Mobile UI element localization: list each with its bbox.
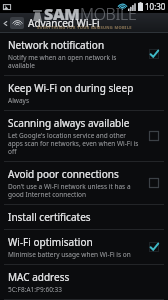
button[interactable]: Disabled <box>146 128 162 144</box>
button[interactable]: Network notification <box>0 33 168 75</box>
button[interactable]: Wi-Fi optimisation <box>0 230 168 264</box>
button[interactable]: Enabled <box>146 239 162 255</box>
button[interactable]: Enabled <box>146 46 162 62</box>
staticText: Avoid poor connections <box>8 167 119 181</box>
staticText: Scanning always available <box>8 116 130 130</box>
staticText: SAM <box>44 3 80 25</box>
button[interactable]: Avoid poor connections <box>0 162 168 204</box>
staticText: Don't use a Wi-Fi network unless it has … <box>8 182 142 199</box>
staticText: Advanced Wi-Fi <box>28 16 100 30</box>
button[interactable]: Scanning always available <box>0 111 168 161</box>
staticText: 5C:F8:A1:P9:60:33 <box>8 285 63 294</box>
staticText: EVERYTHING FOR YOUR SAMSUNG MOBILE <box>37 25 132 30</box>
button[interactable]: Install certificates <box>0 205 168 229</box>
staticText: Let Google's location service and other … <box>8 131 142 156</box>
staticText: Notify me when an open network is availa… <box>8 53 142 70</box>
staticText: MAC address <box>8 270 70 284</box>
staticText: Install certificates <box>8 210 91 224</box>
staticText: Always <box>8 96 30 105</box>
button[interactable]: Navigate up <box>0 13 10 33</box>
staticText: Network notification <box>8 38 105 52</box>
button[interactable]: MAC address <box>0 265 168 299</box>
staticText: 10:30 <box>145 1 166 12</box>
staticText: Keep Wi-Fi on during sleep <box>8 81 134 95</box>
staticText: Minimise battery usage when Wi-Fi is on <box>8 250 131 259</box>
button[interactable]: Disabled <box>146 175 162 191</box>
staticText: MOBILE <box>80 3 137 25</box>
staticText: Wi-Fi optimisation <box>8 235 93 249</box>
button[interactable]: Keep Wi-Fi on during sleep <box>0 76 168 110</box>
